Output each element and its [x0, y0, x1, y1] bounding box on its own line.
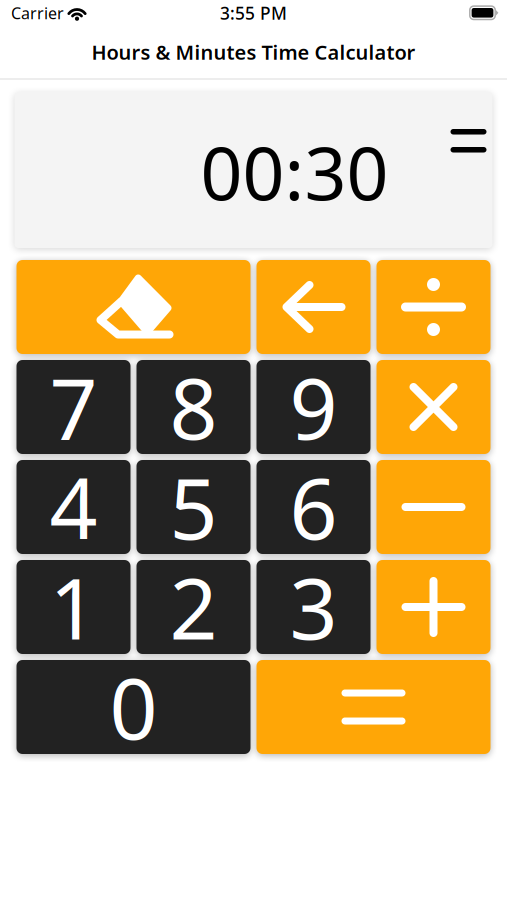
staticText: 7 [49, 351, 97, 463]
button[interactable]: Divide [376, 260, 490, 354]
button[interactable]: Backspace [256, 260, 370, 354]
button[interactable]: 2 [136, 560, 250, 654]
staticText: 00:30 [200, 123, 388, 221]
button[interactable]: Multiply [376, 360, 490, 454]
staticText: Hours & Minutes Time Calculator [91, 39, 415, 65]
button[interactable]: 1 [16, 560, 130, 654]
button[interactable]: 4 [16, 460, 130, 554]
staticText: Carrier [11, 2, 64, 24]
button[interactable]: 6 [256, 460, 370, 554]
button[interactable]: 0 [16, 660, 250, 754]
staticText: 6 [289, 451, 337, 563]
staticText: 9 [289, 351, 337, 463]
button[interactable]: 5 [136, 460, 250, 554]
staticText: 5 [169, 451, 217, 563]
button[interactable]: 7 [16, 360, 130, 454]
staticText: 8 [169, 351, 217, 463]
button[interactable]: Plus [376, 560, 490, 654]
staticText: 3 [289, 551, 337, 663]
staticText: 3:55 PM [220, 1, 287, 24]
button[interactable]: Clear [16, 260, 250, 354]
staticText: 4 [49, 451, 97, 563]
button[interactable]: 9 [256, 360, 370, 454]
staticText: 0 [109, 651, 157, 763]
button[interactable]: Minus [376, 460, 490, 554]
button[interactable]: 3 [256, 560, 370, 654]
button[interactable]: Equals [256, 660, 490, 754]
button[interactable]: 8 [136, 360, 250, 454]
staticText: 1 [49, 551, 97, 663]
staticText: 2 [169, 551, 217, 663]
